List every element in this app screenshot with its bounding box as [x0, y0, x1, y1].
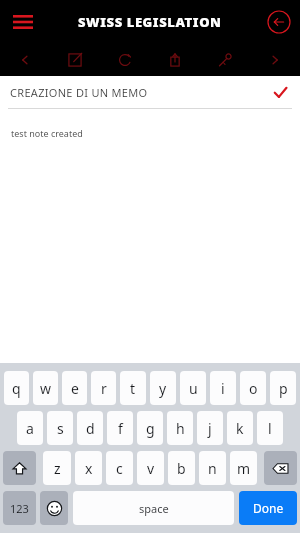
button[interactable]: Backspace: [264, 451, 297, 485]
staticText: SWISS LEGISLATION: [78, 13, 222, 31]
button[interactable]: Menu: [10, 9, 36, 35]
staticText: m: [237, 459, 251, 478]
staticText: Done: [253, 500, 284, 516]
button[interactable]: Done: [239, 491, 297, 525]
button[interactable]: h: [167, 411, 193, 445]
button[interactable]: p: [270, 371, 296, 405]
button[interactable]: Settings: [200, 44, 250, 76]
button[interactable]: g: [137, 411, 163, 445]
staticText: 123: [10, 501, 29, 516]
staticText: y: [159, 379, 167, 398]
button[interactable]: Shift: [3, 451, 36, 485]
button[interactable]: c: [106, 451, 133, 485]
staticText: r: [101, 379, 107, 398]
button[interactable]: o: [240, 371, 266, 405]
staticText: j: [208, 419, 212, 438]
staticText: o: [249, 379, 258, 398]
staticText: w: [40, 379, 52, 398]
staticText: e: [71, 379, 79, 398]
button[interactable]: Back: [267, 10, 291, 34]
staticText: b: [177, 459, 186, 478]
button[interactable]: z: [43, 451, 71, 485]
button[interactable]: k: [227, 411, 253, 445]
button[interactable]: Compose: [50, 44, 100, 76]
staticText: t: [130, 379, 136, 398]
button[interactable]: y: [150, 371, 176, 405]
staticText: v: [147, 459, 155, 478]
staticText: space: [139, 501, 169, 516]
button[interactable]: m: [230, 451, 257, 485]
button[interactable]: s: [47, 411, 73, 445]
button[interactable]: w: [33, 371, 58, 405]
staticText: CREAZIONE DI UN MEMO: [10, 85, 270, 100]
staticText: test note created: [11, 127, 83, 139]
button[interactable]: Next: [250, 44, 300, 76]
button[interactable]: Refresh: [100, 44, 150, 76]
staticText: k: [236, 419, 244, 438]
button[interactable]: x: [75, 451, 102, 485]
button[interactable]: a: [17, 411, 43, 445]
staticText: g: [146, 419, 155, 438]
button[interactable]: f: [107, 411, 133, 445]
staticText: i: [221, 379, 225, 398]
button[interactable]: t: [120, 371, 146, 405]
button[interactable]: n: [199, 451, 226, 485]
button[interactable]: d: [77, 411, 103, 445]
staticText: x: [85, 459, 93, 478]
button[interactable]: space: [73, 491, 234, 525]
button[interactable]: Emoji: [40, 491, 68, 525]
staticText: a: [26, 419, 34, 438]
button[interactable]: j: [197, 411, 223, 445]
button[interactable]: Previous: [0, 44, 50, 76]
staticText: u: [189, 379, 198, 398]
staticText: z: [54, 459, 61, 478]
staticText: s: [57, 419, 64, 438]
button[interactable]: v: [137, 451, 164, 485]
button[interactable]: Confirm: [270, 82, 290, 102]
button[interactable]: q: [4, 371, 29, 405]
button[interactable]: b: [168, 451, 195, 485]
staticText: l: [268, 419, 272, 438]
button[interactable]: 123: [3, 491, 36, 525]
staticText: c: [116, 459, 123, 478]
staticText: q: [12, 379, 21, 398]
staticText: n: [208, 459, 217, 478]
staticText: d: [86, 419, 95, 438]
staticText: p: [279, 379, 288, 398]
button[interactable]: r: [91, 371, 116, 405]
button[interactable]: e: [62, 371, 87, 405]
staticText: h: [176, 419, 185, 438]
button[interactable]: u: [180, 371, 206, 405]
button[interactable]: l: [257, 411, 283, 445]
button[interactable]: i: [210, 371, 236, 405]
button[interactable]: Share: [150, 44, 200, 76]
staticText: f: [118, 419, 123, 438]
